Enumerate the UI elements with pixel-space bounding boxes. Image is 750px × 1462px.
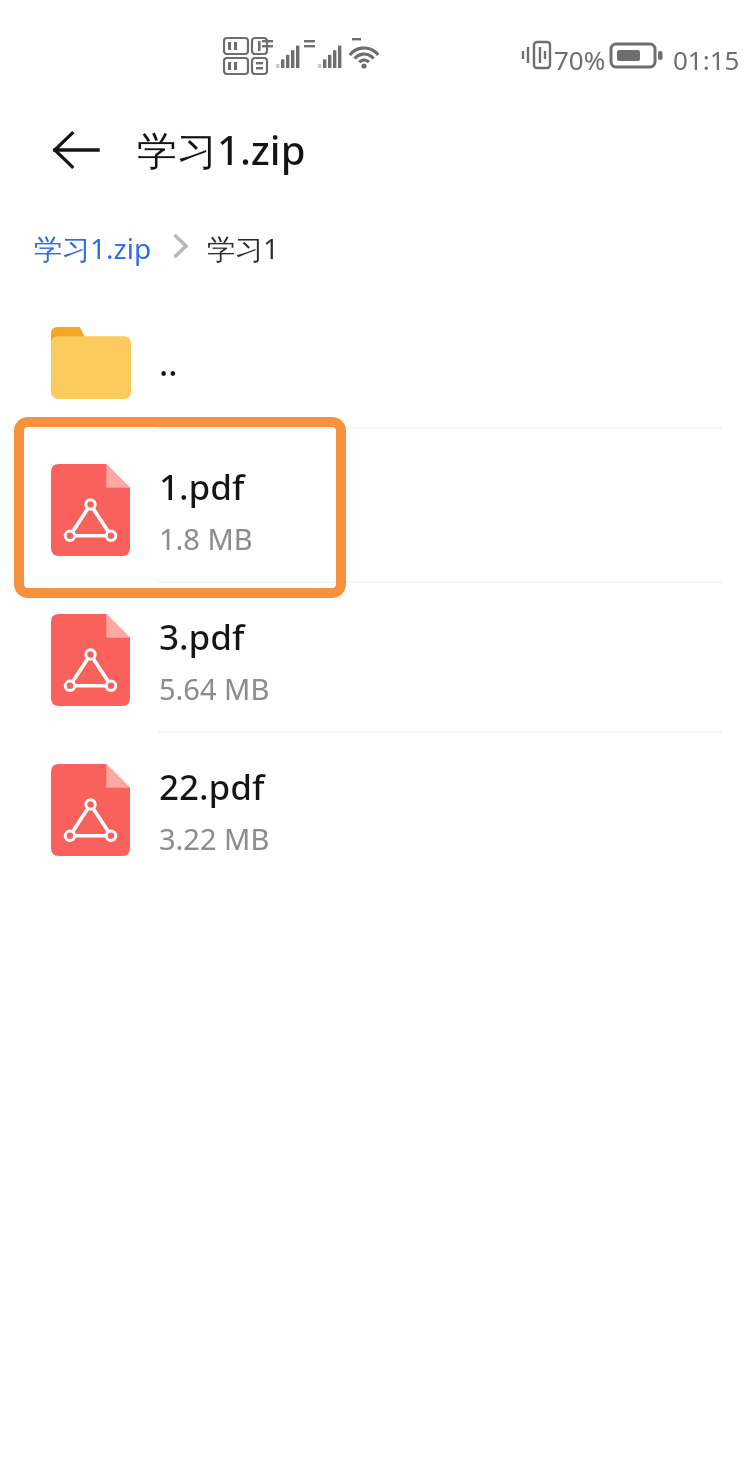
staticText: 70% (554, 42, 606, 77)
staticText: 22.pdf (159, 763, 265, 811)
button[interactable]: 学习1 (203, 224, 284, 272)
staticText: 1.8 MB (159, 519, 253, 557)
button[interactable]: .. (0, 315, 750, 411)
staticText: 3.22 MB (159, 819, 270, 857)
staticText: 学习1 (207, 229, 280, 267)
button[interactable]: 22.pdf (0, 763, 750, 857)
staticText: .. (159, 340, 178, 386)
staticText: 3.pdf (159, 613, 245, 661)
staticText: 学习1.zip (137, 122, 306, 177)
button[interactable]: 3.pdf (0, 613, 750, 707)
button[interactable]: 学习1.zip (30, 224, 156, 272)
staticText: 学习1.zip (34, 229, 152, 267)
staticText: 5.64 MB (159, 669, 270, 707)
button[interactable]: Back (38, 112, 114, 188)
staticText: 01:15 (673, 42, 740, 77)
staticText: 1.pdf (159, 463, 245, 511)
button[interactable]: 1.pdf (0, 463, 750, 557)
